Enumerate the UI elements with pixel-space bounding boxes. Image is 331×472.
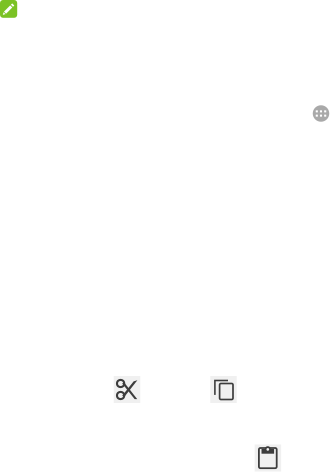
button[interactable]: Copy: [210, 376, 237, 403]
button[interactable]: Compose: [0, 0, 17, 18]
button[interactable]: Paste: [255, 444, 281, 471]
button[interactable]: Apps: [313, 105, 329, 122]
button[interactable]: Cut: [114, 376, 140, 403]
